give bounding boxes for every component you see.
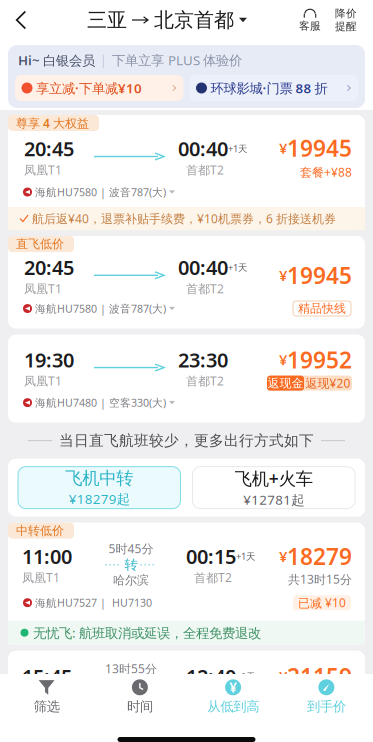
staticText: 降价 bbox=[335, 7, 357, 20]
staticText: 凤凰T1 bbox=[24, 281, 62, 296]
staticText: 共13时15分 bbox=[288, 571, 352, 587]
button[interactable]: ¥ bbox=[186, 673, 280, 720]
staticText: 00:40 bbox=[178, 254, 228, 281]
staticText: 海航HU7480 | 空客330(大) bbox=[35, 396, 166, 410]
staticText: 尊享 4 大权益 bbox=[16, 115, 89, 131]
staticText: 首都T2 bbox=[186, 281, 224, 296]
staticText: 到手价 bbox=[307, 698, 346, 715]
staticText: 19952 bbox=[287, 344, 352, 375]
staticText: 享立减·下单减¥10 bbox=[36, 79, 142, 97]
staticText: ¥ bbox=[229, 678, 237, 696]
staticText: 从低到高 bbox=[207, 698, 259, 715]
button[interactable]: 到手价 bbox=[280, 673, 373, 720]
staticText: ¥ bbox=[279, 265, 287, 285]
staticText: 18279 bbox=[287, 541, 352, 571]
staticText: 下单立享 PLUS 体验价 bbox=[112, 51, 242, 69]
staticText: Hi~ 白银会员 bbox=[18, 51, 95, 69]
staticText: +1天 bbox=[236, 670, 255, 682]
staticText: 返现¥20 bbox=[305, 375, 350, 391]
button[interactable]: 飞机+火车 bbox=[192, 467, 355, 509]
staticText: +1天 bbox=[228, 261, 247, 273]
staticText: 时间 bbox=[127, 698, 153, 715]
staticText: 21159 bbox=[287, 661, 352, 691]
staticText: ¥ bbox=[279, 350, 287, 369]
staticText: 23:30 bbox=[178, 346, 228, 373]
staticText: 5时45分 bbox=[108, 541, 153, 556]
staticText: 20:45 bbox=[24, 254, 74, 281]
staticText: 北京首都 bbox=[154, 8, 234, 32]
staticText: 凤凰T1 bbox=[22, 569, 60, 585]
staticText: 转 bbox=[124, 557, 137, 573]
button[interactable]: 中转低价 bbox=[8, 523, 365, 645]
staticText: 返现金 bbox=[267, 376, 303, 390]
staticText: 提醒 bbox=[335, 20, 357, 33]
button[interactable]: 尊享 4 大权益 bbox=[8, 115, 365, 230]
staticText: 精品快线 bbox=[298, 301, 346, 316]
staticText: 转 bbox=[124, 677, 137, 693]
staticText: 11:00 bbox=[22, 543, 72, 569]
staticText: ¥12781起 bbox=[243, 491, 304, 508]
staticText: 哈尔滨 bbox=[113, 573, 149, 588]
staticText: 三亚 bbox=[87, 8, 127, 32]
staticText: 海航HU7527 | HU7130 bbox=[35, 596, 152, 610]
button[interactable]: 返回 bbox=[0, 0, 42, 40]
staticText: +1天 bbox=[236, 550, 255, 562]
staticText: 首都T2 bbox=[186, 162, 224, 178]
button[interactable]: 时间 bbox=[93, 673, 186, 720]
staticText: ¥ bbox=[279, 546, 287, 566]
staticText: 环球影城·门票 88 折 bbox=[210, 79, 327, 97]
staticText: 共20时55分 bbox=[288, 691, 352, 707]
staticText: 00:40 bbox=[178, 135, 228, 162]
staticText: 凤凰T1 bbox=[22, 689, 60, 705]
button[interactable]: 享立减·下单减¥10 bbox=[15, 75, 183, 101]
staticText: 套餐+¥88 bbox=[300, 164, 352, 180]
button[interactable]: 环球影城·门票 88 折 bbox=[189, 75, 358, 101]
staticText: 20:45 bbox=[24, 135, 74, 162]
button[interactable]: 直飞低价 bbox=[8, 236, 365, 328]
button[interactable]: 客服 bbox=[292, 0, 328, 40]
staticText: 飞机中转 bbox=[65, 468, 133, 489]
staticText: 当日直飞航班较少，更多出行方式如下 bbox=[59, 432, 314, 450]
staticText: 凤凰T1 bbox=[24, 373, 62, 389]
staticText: 00:15 bbox=[186, 543, 236, 569]
button[interactable]: 15:45 bbox=[8, 651, 365, 741]
staticText: 首都T2 bbox=[194, 689, 232, 705]
staticText: 15:45 bbox=[22, 663, 72, 690]
staticText: 首都T2 bbox=[186, 373, 224, 389]
staticText: 直飞低价 bbox=[16, 237, 64, 251]
staticText: 无忧飞: 航班取消或延误，全程免费退改 bbox=[33, 624, 261, 641]
staticText: ¥ bbox=[279, 666, 287, 686]
staticText: 海航HU7580 | 波音787(大) bbox=[35, 301, 166, 316]
button[interactable]: 飞机中转 bbox=[18, 467, 180, 509]
button[interactable]: 19:30 bbox=[8, 334, 365, 423]
staticText: 成都 bbox=[119, 693, 143, 708]
staticText: 筛选 bbox=[34, 698, 60, 715]
staticText: ¥ bbox=[279, 138, 287, 158]
staticText: 飞机+火车 bbox=[235, 467, 313, 490]
staticText: 13时55分 bbox=[105, 661, 157, 677]
staticText: 海航HU7580 | 波音787(大) bbox=[35, 185, 166, 199]
staticText: 航后返¥40，退票补贴手续费，¥10机票券，6 折接送机券 bbox=[32, 211, 336, 226]
staticText: 12:40 bbox=[186, 663, 236, 690]
staticText: 19:30 bbox=[24, 346, 74, 373]
button[interactable]: 三亚 bbox=[87, 0, 247, 40]
staticText: 首都T2 bbox=[194, 569, 232, 585]
staticText: | bbox=[100, 52, 107, 68]
staticText: 中转低价 bbox=[16, 523, 64, 538]
button[interactable]: 筛选 bbox=[0, 673, 93, 720]
staticText: ¥18279起 bbox=[69, 490, 130, 508]
staticText: 19945 bbox=[287, 133, 352, 163]
staticText: 客服 bbox=[299, 19, 321, 32]
staticText: 19945 bbox=[287, 260, 352, 290]
staticText: +1天 bbox=[228, 142, 247, 155]
staticText: 已减 ¥10 bbox=[298, 595, 346, 611]
button[interactable]: 降价 bbox=[328, 0, 364, 40]
staticText: 凤凰T1 bbox=[24, 162, 62, 178]
